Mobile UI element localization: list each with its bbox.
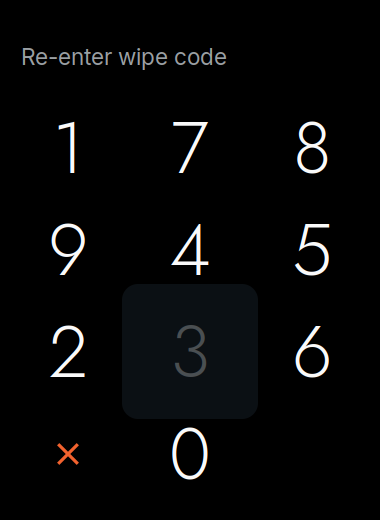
button[interactable]: 1: [0, 81, 136, 215]
staticText: 2: [48, 300, 87, 404]
button[interactable]: 0: [122, 387, 258, 520]
staticText: 4: [169, 198, 210, 302]
staticText: Re-enter wipe code: [21, 43, 227, 70]
button[interactable]: 8: [244, 81, 380, 215]
staticText: 9: [48, 198, 88, 302]
button[interactable]: 9: [0, 183, 136, 317]
staticText: 3: [170, 299, 209, 403]
button[interactable]: 4: [122, 183, 258, 317]
button[interactable]: 5: [244, 183, 380, 317]
staticText: 5: [292, 198, 332, 302]
button[interactable]: 3: [122, 284, 258, 419]
staticText: 0: [169, 402, 211, 506]
button[interactable]: 2: [0, 285, 136, 419]
staticText: 7: [171, 96, 209, 200]
staticText: 8: [293, 96, 331, 200]
button[interactable]: 7: [122, 81, 258, 215]
button[interactable]: Cancel: [0, 387, 136, 520]
staticText: 1: [52, 96, 83, 200]
button[interactable]: 6: [244, 285, 380, 419]
staticText: 6: [292, 300, 332, 404]
